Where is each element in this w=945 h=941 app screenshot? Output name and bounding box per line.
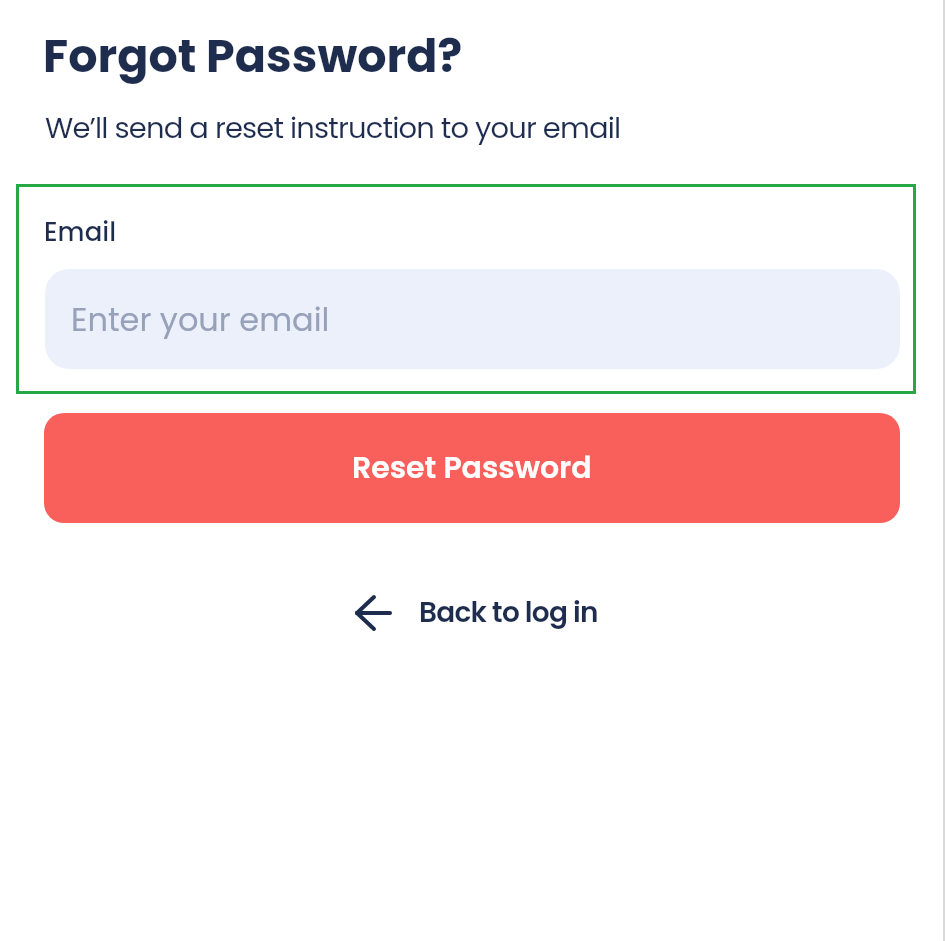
button[interactable]: Back to log in [355,593,598,632]
button[interactable]: Enter your email [45,269,900,369]
staticText: Reset Password [352,447,592,489]
staticText: Forgot Password? [43,24,463,88]
button[interactable]: Reset Password [44,413,900,523]
staticText: We’ll send a reset instruction to your e… [45,108,621,149]
staticText: Enter your email [71,297,330,342]
staticText: Back to log in [419,593,598,632]
staticText: Email [44,214,116,250]
